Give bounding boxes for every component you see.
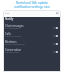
staticText: Mentions — [5, 40, 17, 44]
button[interactable]: Conversation — [3, 48, 61, 56]
staticText: Notify for calls — [5, 34, 22, 37]
staticText: Conversation — [5, 48, 22, 52]
staticText: Nextcloud Talk update notification setti… — [1, 1, 63, 8]
staticText: Chat messages — [5, 24, 24, 28]
staticText: Notify — [5, 17, 14, 21]
staticText: Notifications — [5, 50, 20, 53]
staticText: ▮▮ — [56, 12, 59, 15]
staticText: Calls — [5, 32, 11, 36]
staticText: 9:30 — [5, 12, 10, 15]
button[interactable]: Chat messages — [3, 24, 61, 32]
staticText: When mentioned — [5, 42, 25, 45]
button[interactable]: Mentions — [3, 40, 61, 48]
button[interactable]: Calls — [3, 32, 61, 40]
staticText: All messages — [5, 26, 20, 29]
